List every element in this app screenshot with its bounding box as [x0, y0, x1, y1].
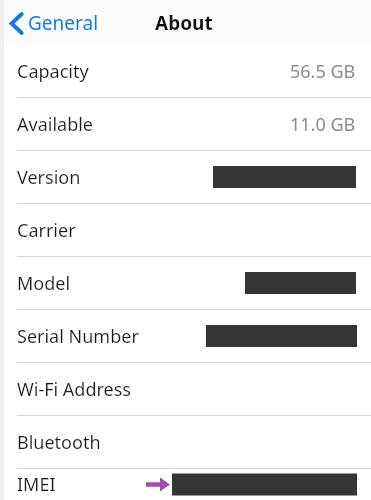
button[interactable]: Version — [0, 151, 371, 203]
staticText: 11.0 GB — [290, 112, 356, 137]
staticText: General — [28, 10, 99, 36]
staticText: About — [155, 10, 213, 36]
staticText: Model — [17, 271, 71, 296]
staticText: Serial Number — [17, 324, 139, 349]
staticText: Available — [17, 112, 93, 137]
button[interactable]: Serial Number — [0, 310, 371, 362]
staticText: Capacity — [17, 59, 89, 84]
button[interactable]: Carrier — [0, 204, 371, 256]
staticText: Wi-Fi Address — [17, 377, 131, 402]
other: IMEI highlighted — [0, 469, 371, 500]
button[interactable]: Wi-Fi Address — [0, 363, 371, 415]
button[interactable]: General — [10, 10, 99, 36]
button[interactable]: IMEI — [0, 469, 371, 500]
staticText: Bluetooth — [17, 430, 101, 455]
staticText: 56.5 GB — [290, 59, 356, 84]
button[interactable]: Capacity — [0, 45, 371, 97]
staticText: IMEI — [17, 472, 56, 497]
staticText: Version — [17, 165, 81, 190]
button[interactable]: Available — [0, 98, 371, 150]
staticText: Carrier — [17, 218, 76, 243]
button[interactable]: Bluetooth — [0, 416, 371, 468]
button[interactable]: Model — [0, 257, 371, 309]
